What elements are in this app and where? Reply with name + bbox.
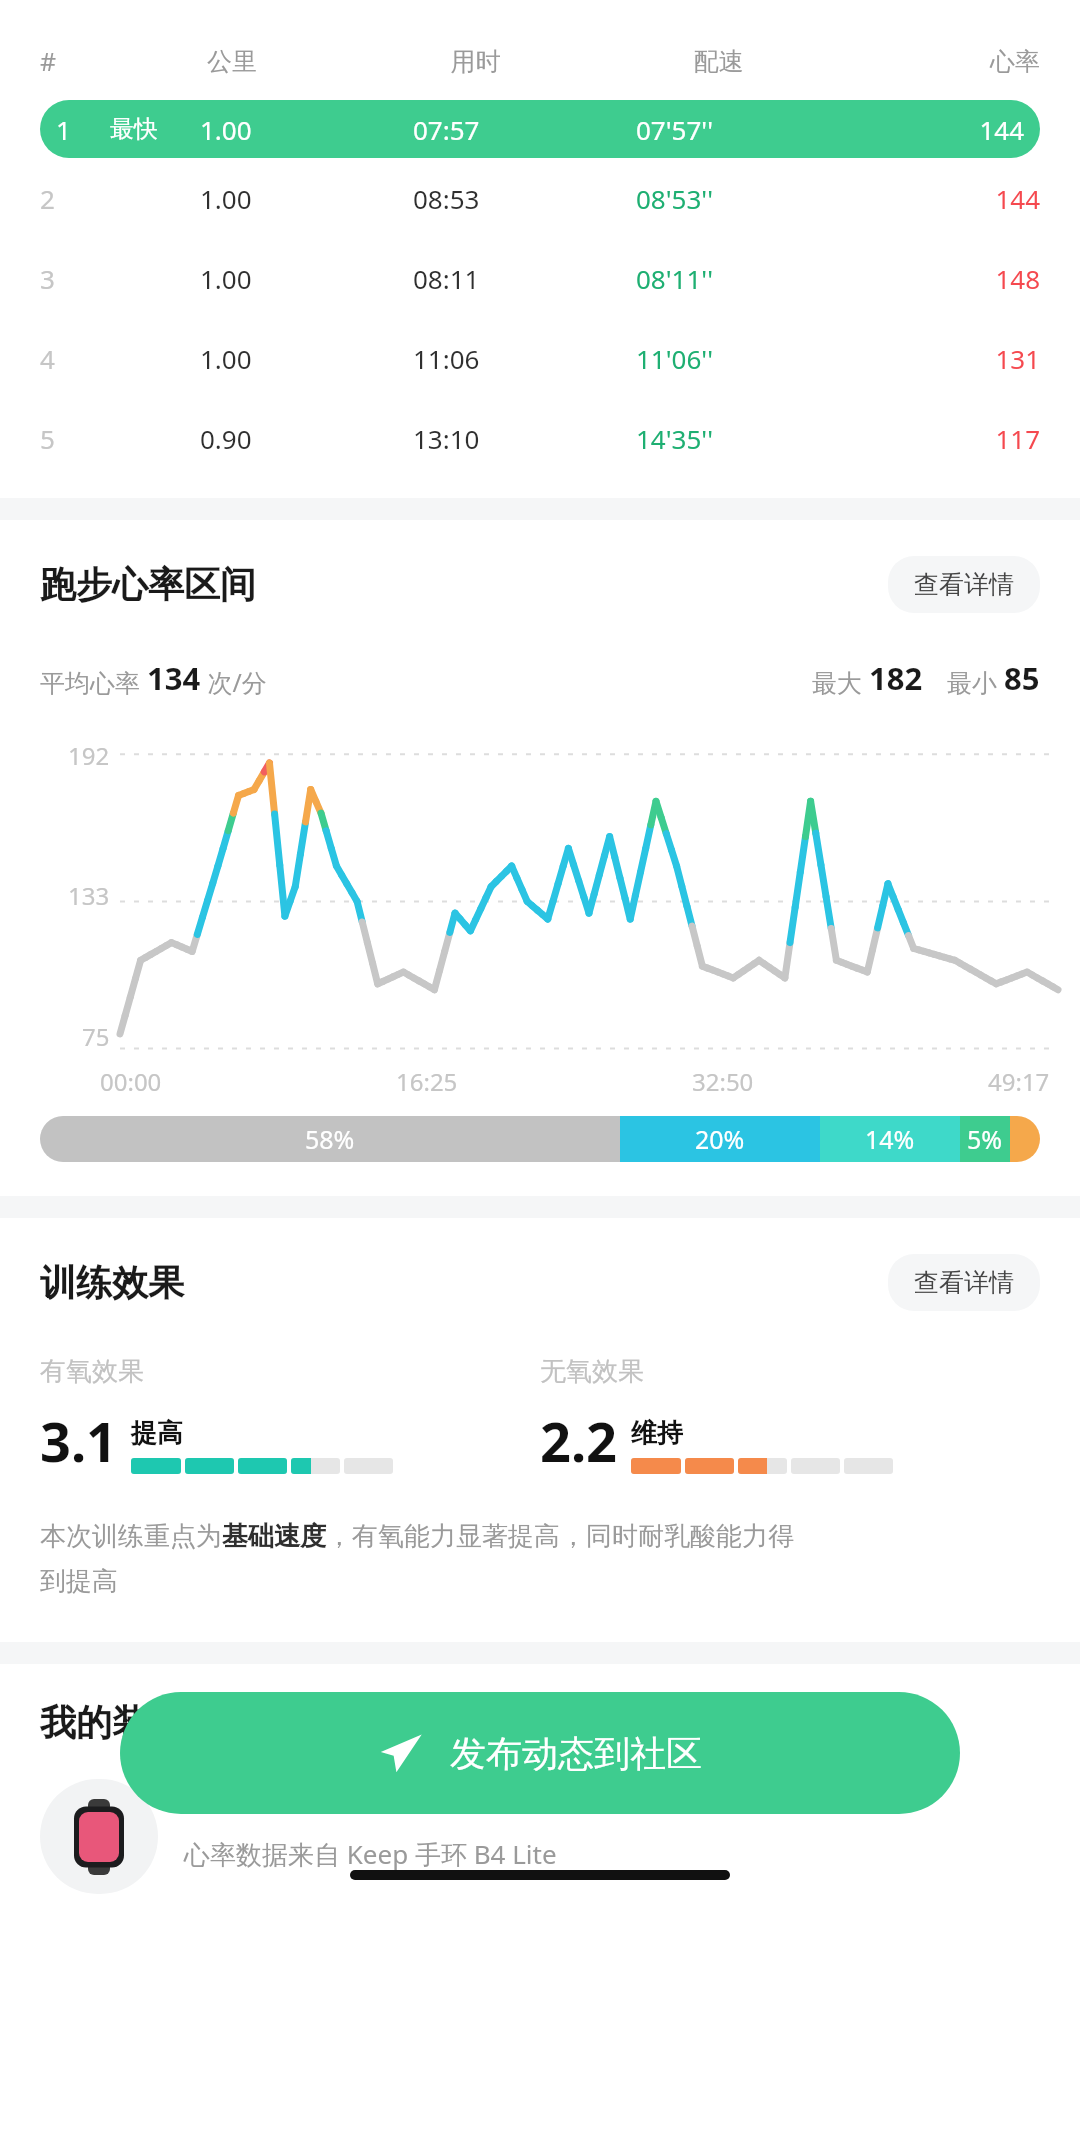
staticText: 最大 <box>812 665 869 699</box>
staticText: 基础速度 <box>222 1520 326 1553</box>
button[interactable]: 查看详情 <box>888 1254 1040 1311</box>
button[interactable]: 1 <box>40 100 1040 158</box>
staticText: 2.2 <box>540 1404 617 1478</box>
staticText: 本次训练重点为 <box>40 1520 222 1553</box>
staticText: 5 <box>40 421 55 456</box>
staticText: 49:17 <box>988 1065 1050 1098</box>
staticText: 我的装备 <box>40 1700 184 1745</box>
button[interactable]: 4 <box>40 318 1040 398</box>
staticText: # <box>40 44 110 78</box>
staticText: 5% <box>967 1122 1003 1156</box>
staticText: 配速 <box>597 46 840 77</box>
staticText: 14'35'' <box>636 421 870 456</box>
staticText: 07'57'' <box>636 112 870 147</box>
staticText: 跑步心率区间 <box>40 562 888 607</box>
staticText: 13:10 <box>413 421 636 456</box>
staticText: 08'53'' <box>636 181 870 216</box>
staticText: 次/分 <box>201 665 267 699</box>
staticText: 1.00 <box>200 261 413 296</box>
staticText: 平均心率 <box>40 665 147 699</box>
staticText: 144 <box>870 112 1024 147</box>
staticText: 08'11'' <box>636 261 870 296</box>
staticText: 11:06 <box>413 341 636 376</box>
button[interactable]: 3 <box>40 238 1040 318</box>
staticText: 心率数据来自 Keep 手环 B4 Lite <box>184 1836 557 1872</box>
staticText: 08:53 <box>413 181 636 216</box>
staticText: 4 <box>40 341 55 376</box>
staticText: 144 <box>870 181 1040 216</box>
staticText: 00:00 <box>100 1065 162 1098</box>
button[interactable]: 查看详情 <box>888 556 1040 613</box>
staticText: 1 <box>56 112 71 147</box>
staticText: 提高 <box>131 1417 183 1450</box>
button[interactable]: 5 <box>40 398 1040 478</box>
staticText: 148 <box>870 261 1040 296</box>
staticText: 192 <box>68 739 110 772</box>
staticText: 08:11 <box>413 261 636 296</box>
staticText: 用时 <box>354 46 597 77</box>
staticText: ，有氧能力显著提高，同时耐乳酸能力得 <box>326 1520 794 1553</box>
staticText: 16:25 <box>396 1065 458 1098</box>
button[interactable]: 2 <box>40 158 1040 238</box>
button[interactable] <box>40 1779 158 1894</box>
staticText: 1.00 <box>200 112 413 147</box>
staticText: 133 <box>68 879 110 912</box>
staticText: 11'06'' <box>636 341 870 376</box>
button[interactable]: 无氧效果 <box>540 1355 1040 1478</box>
staticText: 117 <box>870 421 1040 456</box>
button[interactable]: 有氧效果 <box>40 1355 540 1478</box>
staticText: 维持 <box>631 1417 683 1450</box>
staticText: 131 <box>870 341 1040 376</box>
staticText: 1.00 <box>200 341 413 376</box>
staticText: 3.1 <box>40 1404 117 1478</box>
staticText: 20% <box>695 1122 745 1156</box>
staticText: 14% <box>865 1122 915 1156</box>
staticText: 1.00 <box>200 181 413 216</box>
staticText: 公里 <box>110 46 354 77</box>
staticText: 3 <box>40 261 55 296</box>
staticText: 发布动态到社区 <box>450 1731 702 1776</box>
staticText: 到提高 <box>40 1565 118 1598</box>
staticText: 2 <box>40 181 55 216</box>
staticText: 训练效果 <box>40 1260 888 1305</box>
staticText: 心率 <box>840 46 1040 77</box>
staticText: 75 <box>82 1020 110 1053</box>
button[interactable]: 58% <box>40 1116 1040 1162</box>
staticText: 85 <box>1004 657 1040 699</box>
staticText: 查看详情 <box>914 1267 1014 1298</box>
staticText: 58% <box>305 1122 355 1156</box>
staticText: 查看详情 <box>914 569 1014 600</box>
staticText: 134 <box>147 657 201 699</box>
staticText: 无氧效果 <box>540 1355 644 1388</box>
button[interactable]: 发布动态到社区 <box>120 1692 960 1814</box>
staticText: 最小 <box>947 665 1004 699</box>
staticText: 182 <box>869 657 923 699</box>
staticText: 0.90 <box>200 421 413 456</box>
staticText: 最快 <box>110 114 158 144</box>
staticText: 07:57 <box>413 112 636 147</box>
staticText: 32:50 <box>692 1065 754 1098</box>
staticText: 有氧效果 <box>40 1355 144 1388</box>
